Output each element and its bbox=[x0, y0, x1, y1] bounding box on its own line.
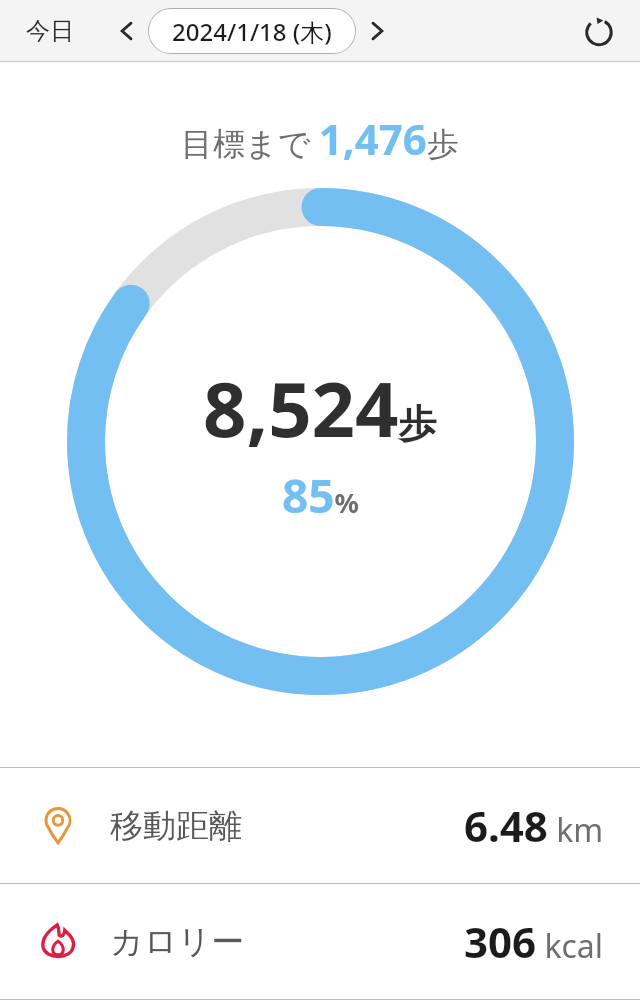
button[interactable]: 今日 bbox=[20, 8, 80, 54]
button[interactable]: Previous day bbox=[106, 11, 146, 51]
staticText: 8,524歩 bbox=[203, 356, 437, 460]
staticText: 2024/1/18 (木) bbox=[172, 15, 332, 48]
other: Distance bbox=[36, 804, 80, 848]
staticText: 目標まで 1,476歩 bbox=[181, 110, 459, 167]
button[interactable]: Next day bbox=[358, 11, 398, 51]
button[interactable]: 2024/1/18 (木) bbox=[148, 8, 356, 54]
staticText: 85% bbox=[282, 464, 359, 527]
button[interactable]: Distance bbox=[0, 768, 640, 883]
staticText: 移動距離 bbox=[110, 805, 242, 847]
staticText: 306 kcal bbox=[464, 913, 604, 970]
staticText: 6.48 km bbox=[464, 797, 604, 854]
staticText: カロリー bbox=[110, 921, 245, 963]
button[interactable]: Calories bbox=[0, 884, 640, 999]
button[interactable]: Refresh bbox=[576, 8, 622, 54]
staticText: 今日 bbox=[26, 16, 74, 46]
other: Calories bbox=[36, 920, 80, 964]
